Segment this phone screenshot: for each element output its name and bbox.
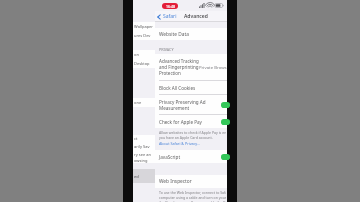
button[interactable]: one	[133, 98, 155, 107]
button[interactable]: Check for Apple Pay	[155, 115, 227, 128]
staticText: PRIVACY	[159, 47, 174, 52]
staticText: Private Brows	[199, 64, 227, 70]
staticText: Web Inspector	[159, 178, 192, 185]
staticText: Allow websites to check if Apple Pay is …	[159, 130, 226, 135]
staticText: computer using a cable and turn on your …	[159, 195, 226, 200]
staticText: arily Sav	[134, 144, 150, 149]
staticText: Safari	[163, 13, 177, 20]
button[interactable]: Privacy Preserving Ad	[155, 95, 227, 114]
other: Toggle on	[221, 154, 230, 160]
staticText: the Develop menu. You can enable the Dev…	[159, 200, 226, 202]
staticText: ry see an	[134, 152, 151, 157]
staticText: Advanced Tracking	[159, 58, 199, 64]
button[interactable]: About Safari & Privacy...	[159, 141, 201, 146]
button[interactable]: JavaScript	[155, 150, 227, 163]
staticText: Check for Apple Pay	[159, 119, 202, 125]
other: Back	[157, 14, 161, 20]
button[interactable]: Block All Cookies	[155, 81, 227, 94]
staticText: Measurement	[159, 105, 190, 111]
button[interactable]: Desktop	[133, 59, 155, 68]
staticText: JavaScript	[159, 154, 181, 160]
button[interactable]: on	[133, 50, 155, 59]
button[interactable]: Back	[157, 13, 177, 20]
button[interactable]: arily Sav	[133, 142, 155, 151]
staticText: on	[134, 52, 139, 57]
button[interactable]: Web Inspector	[155, 175, 227, 188]
button[interactable]: ry see an	[133, 151, 155, 157]
other: Toggle on	[221, 102, 230, 108]
staticText: Wallpaper	[134, 24, 154, 29]
button[interactable]: ed	[133, 169, 155, 183]
button[interactable]: Wallpaper	[133, 22, 155, 31]
staticText: one	[134, 100, 142, 105]
staticText: Website Data	[159, 31, 189, 38]
staticText: Advanced	[184, 13, 208, 20]
staticText: owsing	[134, 158, 148, 163]
button[interactable]: ures Dev	[133, 31, 155, 40]
staticText: Desktop	[134, 61, 150, 66]
button[interactable]: Advanced Tracking	[155, 54, 227, 80]
button[interactable]: owsing	[133, 157, 155, 163]
staticText: ed	[134, 174, 139, 179]
staticText: Block All Cookies	[159, 85, 196, 91]
staticText: ct	[134, 136, 138, 141]
button[interactable]: ct	[133, 135, 155, 142]
staticText: and Fingerprinting	[159, 64, 199, 70]
staticText: you have an Apple Card account.	[159, 135, 213, 140]
staticText: 16:48	[166, 4, 175, 9]
staticText: ures Dev	[134, 33, 151, 38]
staticText: Privacy Preserving Ad	[159, 99, 206, 105]
staticText: To use the Web Inspector, connect to Saf…	[159, 190, 226, 195]
button[interactable]: Website Data	[155, 28, 227, 40]
staticText: Protection	[159, 70, 181, 76]
other: Toggle on	[221, 119, 230, 125]
